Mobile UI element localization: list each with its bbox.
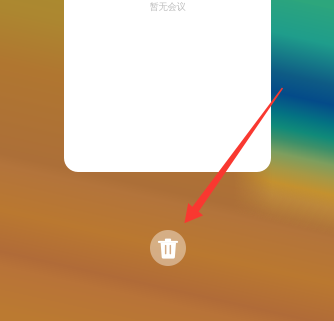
- button[interactable]: 删除: [150, 230, 186, 266]
- staticText: 暂无会议: [149, 1, 185, 12]
